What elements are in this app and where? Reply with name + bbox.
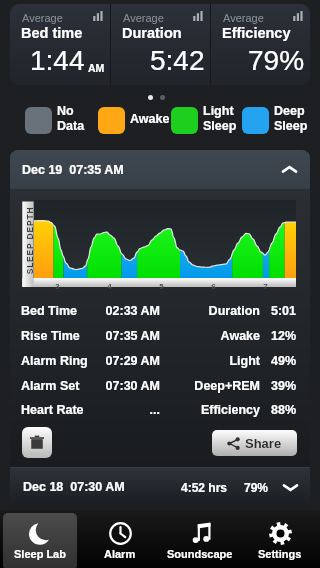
staticText: Light [203, 104, 234, 118]
staticText: SLEEP DEPTH [24, 206, 33, 274]
staticText: Average [123, 12, 164, 24]
button[interactable]: Dec 18 07:30 AM [10, 468, 310, 506]
other: Collapse [282, 162, 297, 177]
staticText: Light [229, 354, 260, 368]
staticText: AM [88, 62, 105, 74]
staticText: Average [223, 12, 264, 24]
staticText: 39% [270, 379, 296, 393]
staticText: 7 [263, 282, 268, 291]
staticText: 1:44 [30, 45, 85, 76]
staticText: Deep+REM [194, 379, 260, 393]
staticText: ... [149, 403, 160, 417]
button[interactable]: Delete [22, 427, 52, 458]
staticText: 12% [270, 329, 296, 343]
staticText: Settings [258, 548, 302, 560]
staticText: Efficiency [200, 403, 260, 417]
button[interactable]: Settings [243, 513, 317, 568]
other: Expand [283, 480, 298, 495]
button[interactable]: Soundscape [163, 513, 237, 568]
other: Sleep Lab [29, 522, 52, 545]
staticText: Alarm Set [21, 379, 80, 393]
staticText: 5:01 [270, 304, 296, 318]
staticText: 5:42 [150, 45, 205, 76]
button[interactable]: Dec 19 07:35 AM [10, 150, 310, 189]
staticText: Dec 19 07:35 AM [22, 163, 124, 177]
staticText: 88% [270, 403, 296, 417]
button[interactable]: Average [10, 4, 110, 85]
button[interactable]: Awake [98, 103, 170, 134]
staticText: Deep [274, 104, 305, 118]
staticText: Heart Rate [21, 403, 84, 417]
staticText: Data [57, 119, 85, 133]
button[interactable]: Sleep Lab [3, 513, 77, 568]
staticText: 4:52 hrs [181, 481, 228, 494]
button[interactable]: Share [212, 430, 297, 456]
staticText: 07:29 AM [105, 354, 160, 368]
staticText: 3 [55, 282, 60, 291]
button[interactable]: Deep [242, 103, 308, 134]
staticText: Alarm [104, 548, 136, 560]
staticText: Share [245, 436, 282, 451]
staticText: Duration [122, 25, 182, 41]
staticText: Bed time [21, 25, 83, 41]
staticText: Awake [130, 112, 170, 126]
staticText: Bed Time [21, 304, 78, 318]
button[interactable]: Average [111, 4, 210, 85]
staticText: 07:30 AM [105, 379, 160, 393]
button[interactable]: Alarm [83, 513, 157, 568]
staticText: Sleep [203, 119, 237, 133]
button[interactable]: Average [211, 4, 310, 85]
staticText: Duration [208, 304, 260, 318]
staticText: Sleep [274, 119, 308, 133]
staticText: Rise Time [21, 329, 80, 343]
staticText: Sleep Lab [14, 548, 66, 560]
staticText: 79% [244, 481, 269, 494]
staticText: 5 [159, 282, 164, 291]
button[interactable]: No [25, 103, 85, 134]
staticText: Awake [220, 329, 260, 343]
staticText: 79% [248, 45, 305, 76]
staticText: 49% [270, 354, 296, 368]
staticText: 02:33 AM [105, 304, 160, 318]
staticText: Soundscape [167, 548, 233, 560]
staticText: Average [22, 12, 63, 24]
staticText: 6 [211, 282, 216, 291]
other: Alarm [109, 522, 132, 545]
other: Soundscape [189, 522, 212, 545]
staticText: 4 [107, 282, 112, 291]
other: Settings [269, 522, 292, 545]
button[interactable]: Light [171, 103, 237, 134]
staticText: Alarm Ring [21, 354, 88, 368]
staticText: Efficiency [222, 25, 291, 41]
staticText: Dec 18 07:30 AM [23, 480, 125, 494]
staticText: No [57, 104, 74, 118]
staticText: 07:35 AM [105, 329, 160, 343]
